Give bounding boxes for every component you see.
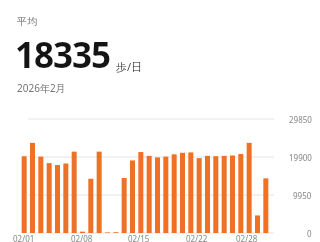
staticText: 0 — [307, 228, 312, 239]
staticText: 29850 — [289, 114, 312, 125]
staticText: 平均 — [17, 15, 37, 28]
staticText: 02/08 — [71, 233, 93, 242]
staticText: 19900 — [289, 152, 312, 163]
staticText: 02/01 — [13, 233, 35, 242]
staticText: 18335 — [15, 31, 111, 79]
staticText: 02/22 — [186, 233, 208, 242]
staticText: 歩/日 — [116, 59, 143, 74]
staticText: 9950 — [293, 190, 312, 201]
button[interactable]: 29850 — [0, 106, 320, 240]
staticText: 2026年2月 — [17, 81, 66, 95]
staticText: 02/15 — [128, 233, 150, 242]
staticText: 02/28 — [236, 233, 258, 242]
